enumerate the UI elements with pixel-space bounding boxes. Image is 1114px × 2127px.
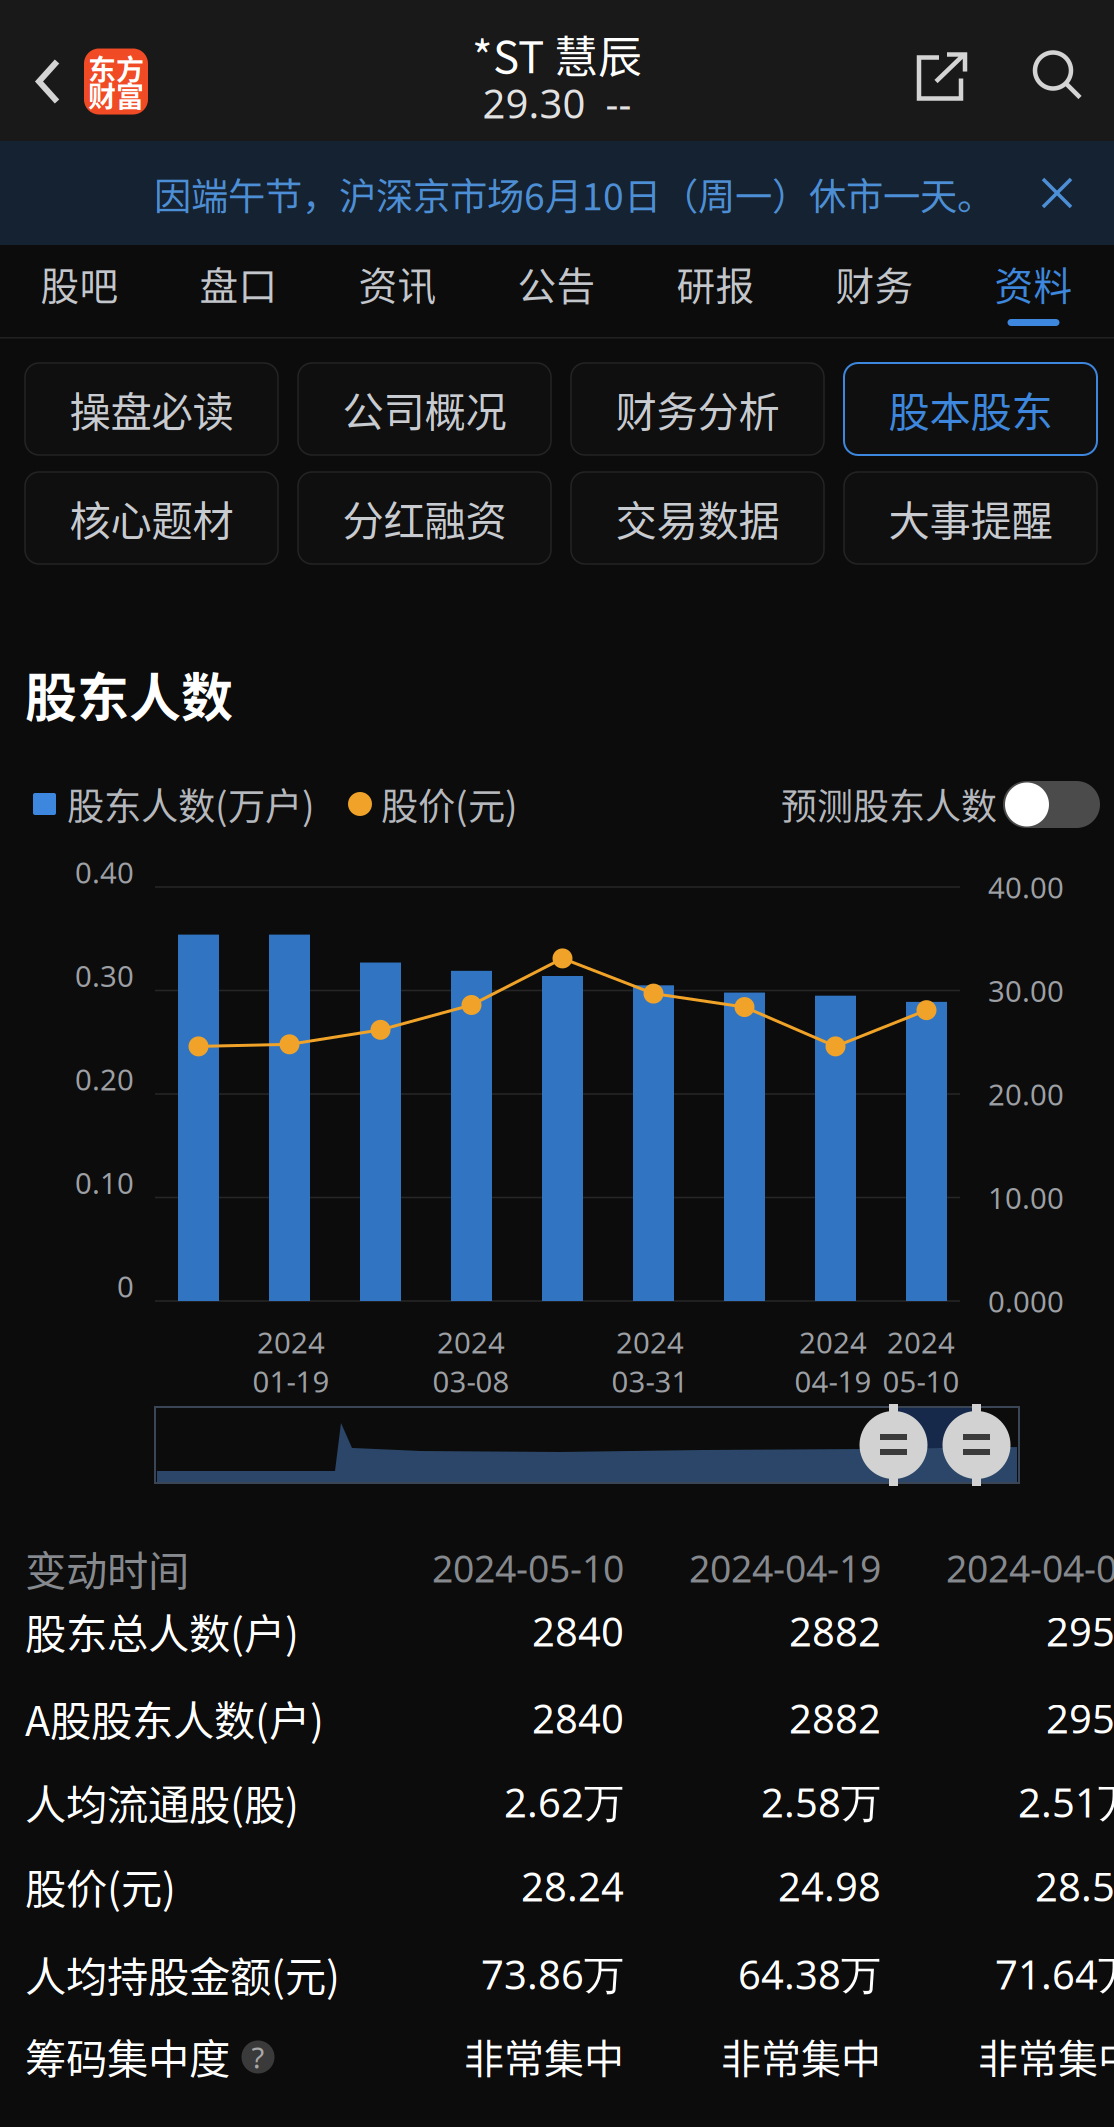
staticText: 28.24 [521,1859,624,1912]
button[interactable]: 公告 [477,245,636,338]
staticText: 非常集中 [721,2027,881,2085]
staticText: 2024 [257,1322,325,1361]
button[interactable]: 股吧 [0,245,159,338]
button[interactable]: 左侧范围手柄 [859,1404,928,1486]
staticText: 73.86万 [481,1947,624,2000]
button[interactable]: 右侧范围手柄 [942,1404,1011,1486]
staticText: ? [251,2037,264,2076]
staticText: 2953 [1046,1604,1114,1657]
staticText: 2882 [789,1604,881,1657]
staticText: 公司概况 [342,379,506,439]
staticText: 财务分析 [615,379,779,439]
staticText: 30.00 [988,971,1064,1010]
staticText: 2024 [799,1322,867,1361]
button[interactable]: 操盘必读 [25,363,278,455]
staticText: 东方 [88,48,144,88]
button[interactable]: 分红融资 [298,472,551,564]
staticText: 核心题材 [69,488,233,548]
staticText: 2024-04-09 [946,1543,1114,1593]
staticText: 股价(元) [25,1856,176,1916]
staticText: A股股东人数(户) [25,1688,324,1748]
button[interactable]: 分享 [890,6,994,147]
staticText: 盘口 [199,255,277,311]
staticText: 人均流通股(股) [25,1772,299,1832]
button[interactable]: 资料 [954,245,1113,338]
button[interactable]: 盘口 [159,245,318,338]
staticText: 24.98 [778,1859,881,1912]
staticText: 2024-04-19 [689,1543,881,1593]
button[interactable]: 股本股东 [844,363,1097,455]
staticText: 非常集中 [978,2027,1114,2085]
staticText: 2840 [532,1691,624,1744]
staticText: 财富 [88,75,144,115]
staticText: 股东人数 [25,656,233,732]
button[interactable]: 研报 [636,245,795,338]
button[interactable]: 公司概况 [298,363,551,455]
staticText: 20.00 [988,1074,1064,1113]
staticText: *ST 慧辰 [472,22,642,86]
staticText: 操盘必读 [69,379,233,439]
staticText: 股本股东 [888,379,1052,439]
button[interactable]: 财务分析 [571,363,824,455]
staticText: 财务 [835,255,913,311]
button[interactable]: 资讯 [318,245,477,338]
staticText: 2024 [437,1322,505,1361]
staticText: 非常集中 [464,2027,624,2085]
button[interactable]: 交易数据 [571,472,824,564]
staticText: 0.30 [75,956,134,995]
button[interactable]: 大事提醒 [844,472,1097,564]
button[interactable]: 核心题材 [25,472,278,564]
staticText: 0 [117,1266,134,1305]
staticText: 2.62万 [504,1775,624,1828]
staticText: 因端午节，沪深京市场6月10日（周一）休市一天。 [154,167,994,221]
staticText: 0.40 [75,852,134,891]
staticText: 交易数据 [615,488,779,548]
staticText: 大事提醒 [888,488,1052,548]
staticText: 股吧 [40,255,118,311]
staticText: 01-19 [252,1361,329,1400]
staticText: 筹码集中度 [25,2026,230,2086]
staticText: 0.20 [75,1059,134,1098]
button[interactable]: 返回 [0,11,160,152]
staticText: 03-08 [432,1361,509,1400]
staticText: 10.00 [988,1178,1064,1217]
staticText: 人均持股金额(元) [25,1944,340,2004]
staticText: 2840 [532,1604,624,1657]
button[interactable]: 因端午节，沪深京市场6月10日（周一）休市一天。 [0,141,1114,245]
staticText: 股东总人数(户) [25,1601,299,1661]
staticText: 71.64万 [995,1947,1114,2000]
button[interactable]: 预测股东人数 [1003,781,1100,828]
staticText: 资讯 [358,255,436,311]
staticText: 40.00 [988,867,1064,906]
staticText: 2.58万 [761,1775,881,1828]
staticText: 研报 [676,255,754,311]
staticText: 2.51万 [1018,1775,1114,1828]
staticText: 0.10 [75,1163,134,1202]
staticText: 2024 [616,1322,684,1361]
staticText: 2953 [1046,1691,1114,1744]
staticText: 预测股东人数 [781,778,997,830]
staticText: 2882 [789,1691,881,1744]
staticText: 29.30 -- [482,76,631,129]
staticText: 28.56 [1035,1859,1114,1912]
staticText: 64.38万 [738,1947,881,2000]
staticText: 股价(元) [381,777,518,831]
staticText: 变动时间 [25,1538,189,1598]
staticText: 2024 [887,1322,955,1361]
button[interactable]: 搜索 [1006,6,1110,147]
button[interactable]: 财务 [795,245,954,338]
staticText: 04-19 [794,1361,871,1400]
staticText: 分红融资 [342,488,506,548]
staticText: 资料 [994,255,1072,311]
staticText: 05-10 [882,1361,959,1400]
staticText: 0.000 [988,1281,1064,1320]
staticText: 03-31 [611,1361,688,1400]
staticText: 2024-05-10 [432,1543,624,1593]
staticText: 公告 [517,255,595,311]
staticText: 股东人数(万户) [67,777,315,831]
